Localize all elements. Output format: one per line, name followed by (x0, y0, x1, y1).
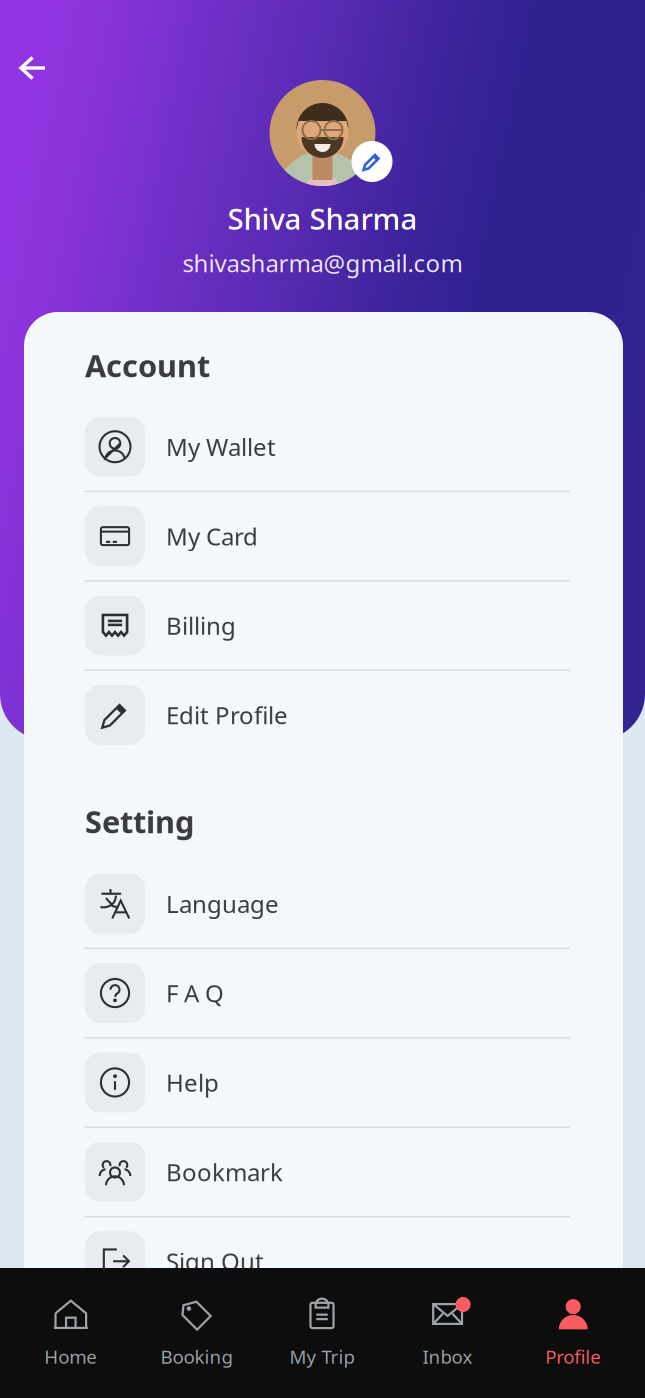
staticText: Booking (160, 1344, 232, 1369)
staticText: Language (166, 888, 279, 920)
staticText: My Wallet (166, 431, 276, 463)
button[interactable]: Booking (134, 1268, 259, 1398)
staticText: Account (85, 345, 210, 386)
staticText: shivasharma@gmail.com (182, 247, 462, 279)
button[interactable]: My Wallet (24, 403, 623, 491)
staticText: Inbox (423, 1344, 473, 1369)
staticText: My Card (166, 520, 258, 552)
button[interactable]: Sign Out (24, 1217, 623, 1305)
button[interactable]: Language (24, 860, 623, 948)
staticText: My Trip (289, 1344, 354, 1369)
button[interactable]: Edit profile photo (351, 141, 392, 182)
button[interactable]: Billing (24, 581, 623, 669)
staticText: Profile (545, 1344, 601, 1369)
button[interactable]: Profile (510, 1268, 636, 1398)
staticText: Shiva Sharma (227, 199, 417, 238)
staticText: Help (166, 1066, 219, 1098)
button[interactable]: My Trip (259, 1268, 385, 1398)
button[interactable]: Inbox (385, 1268, 510, 1398)
button[interactable]: Home (8, 1268, 134, 1398)
button[interactable]: F A Q (24, 949, 623, 1037)
staticText: Edit Profile (166, 699, 288, 731)
staticText: Setting (85, 801, 194, 842)
staticText: Sign Out (166, 1245, 264, 1277)
button[interactable]: Back (4, 39, 62, 97)
button[interactable]: My Card (24, 492, 623, 580)
button[interactable]: Bookmark (24, 1128, 623, 1216)
staticText: Billing (166, 610, 236, 641)
staticText: Home (44, 1344, 97, 1369)
button[interactable]: Edit Profile (24, 671, 623, 759)
button[interactable]: Help (24, 1038, 623, 1126)
staticText: F A Q (166, 977, 224, 1009)
staticText: Bookmark (166, 1156, 283, 1188)
